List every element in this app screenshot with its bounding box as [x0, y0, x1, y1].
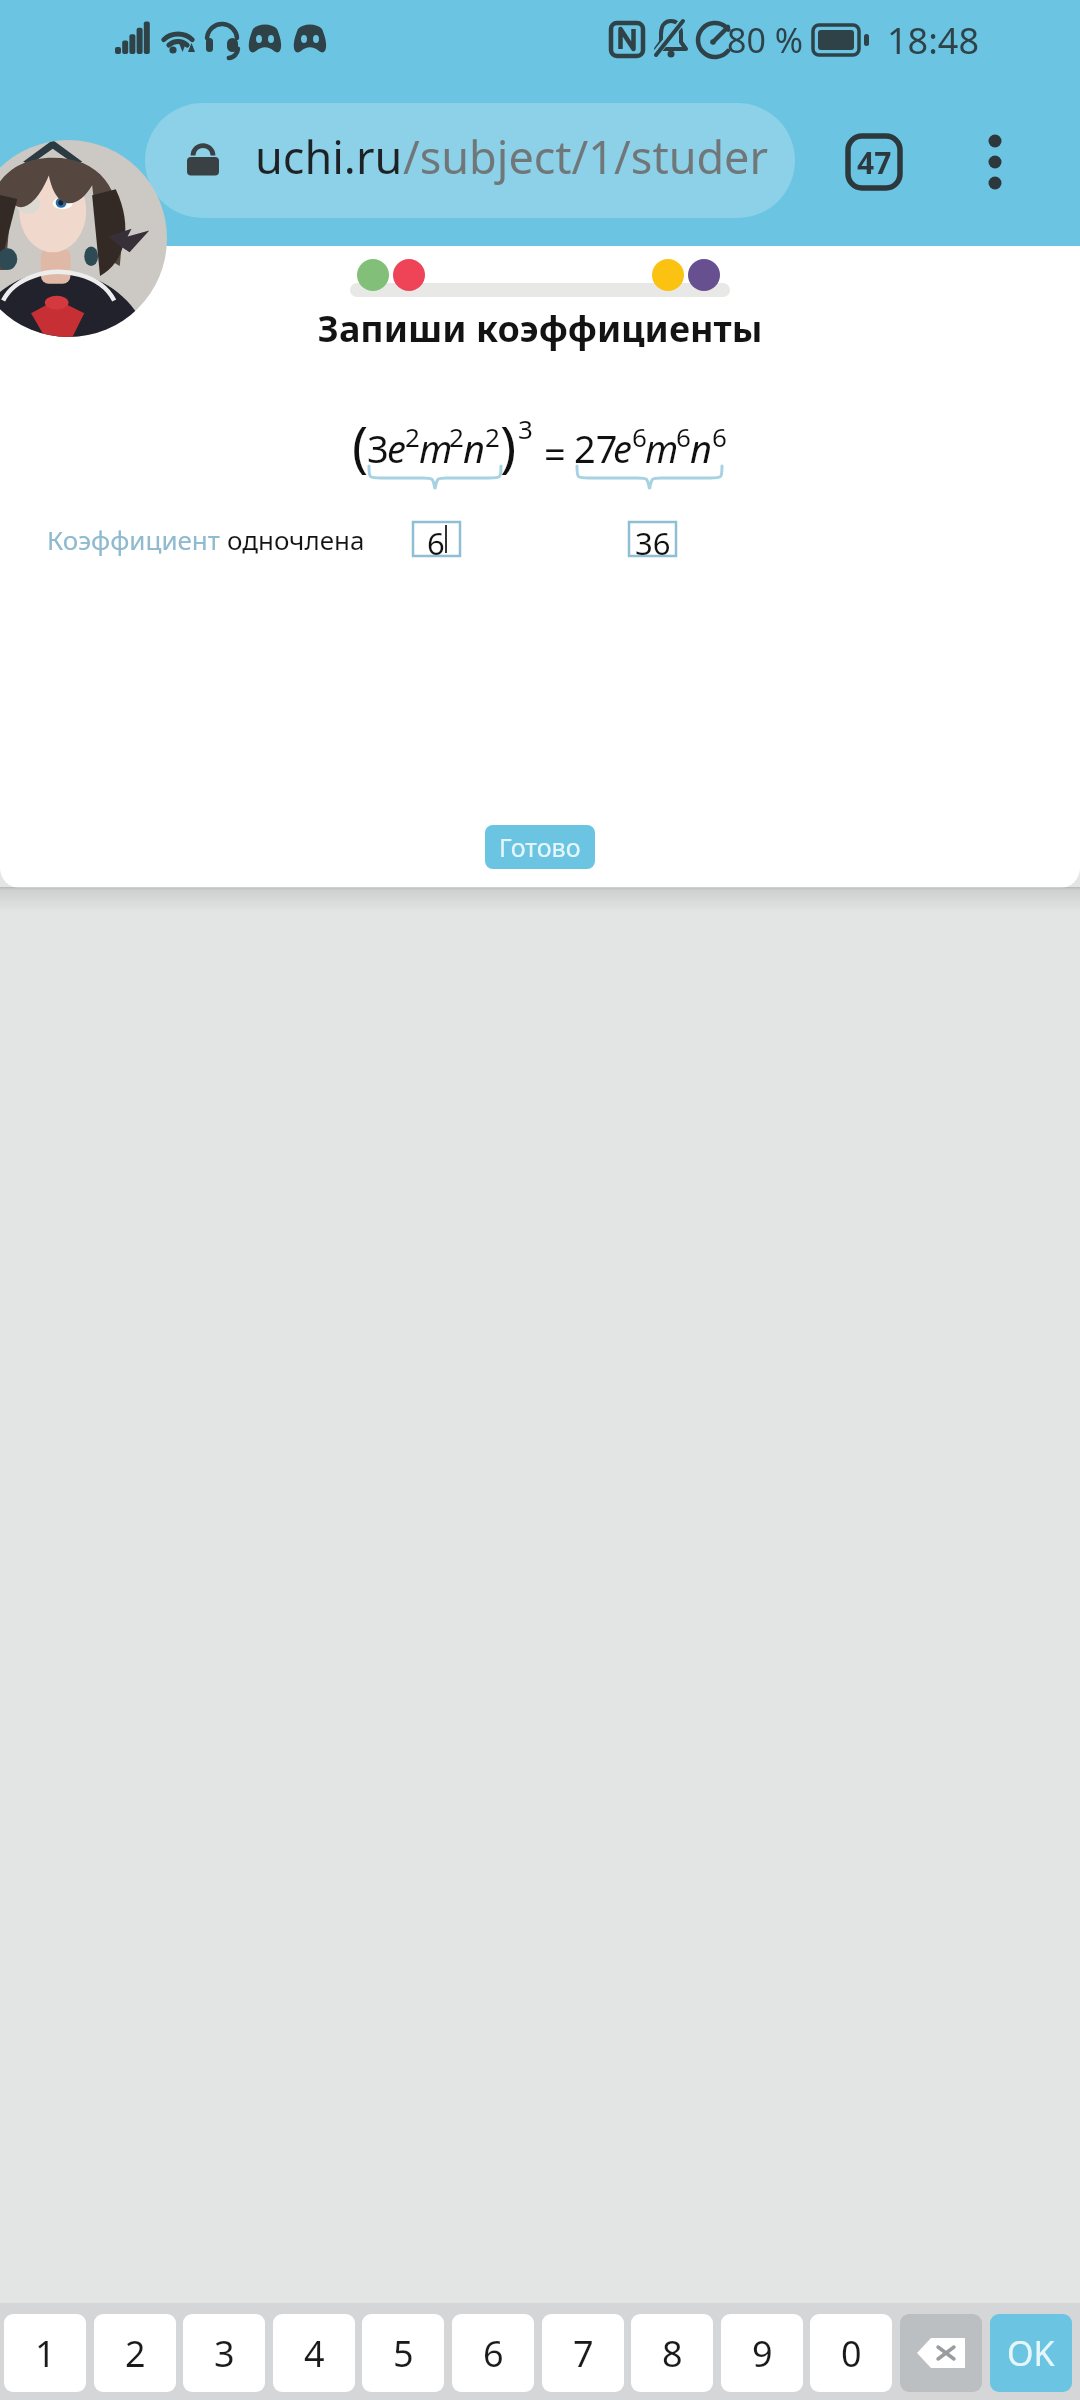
staticText: 27: [574, 422, 618, 474]
button[interactable]: Tabs: [846, 134, 902, 190]
staticText: e: [387, 422, 406, 474]
staticText: m: [419, 422, 453, 474]
staticText: n: [690, 422, 713, 474]
staticText: (: [352, 408, 369, 482]
button[interactable]: More options: [963, 130, 1027, 194]
button[interactable]: 9: [721, 2314, 803, 2392]
staticText: 2: [405, 419, 420, 454]
staticText: Коэффициент: [47, 522, 227, 557]
button[interactable]: Готово: [485, 825, 595, 869]
button[interactable]: 6: [452, 2314, 534, 2392]
staticText: uchi.ru: [255, 126, 403, 187]
staticText: Готово: [499, 830, 581, 864]
staticText: 18:48: [887, 16, 980, 65]
staticText: m: [645, 422, 679, 474]
button[interactable]: 7: [542, 2314, 624, 2392]
button[interactable]: 5: [362, 2314, 444, 2392]
staticText: n: [463, 422, 486, 474]
staticText: 2: [485, 419, 500, 454]
staticText: 6: [427, 522, 445, 556]
button[interactable]: 36: [629, 522, 676, 556]
staticText: e: [613, 422, 632, 474]
staticText: 47: [857, 142, 892, 183]
staticText: 8: [662, 2329, 683, 2378]
staticText: 9: [752, 2329, 773, 2378]
staticText: Запиши коэффициенты: [0, 304, 1080, 353]
staticText: 80 %: [727, 17, 803, 63]
staticText: 3: [367, 422, 389, 474]
staticText: 7: [573, 2329, 594, 2378]
staticText: ): [500, 408, 517, 482]
button[interactable]: 6: [413, 522, 460, 556]
button[interactable]: OK: [990, 2314, 1072, 2392]
staticText: 3: [214, 2329, 235, 2378]
staticText: 6: [483, 2329, 504, 2378]
button[interactable]: 1: [4, 2314, 86, 2392]
staticText: 6: [676, 419, 691, 454]
staticText: 36: [635, 522, 671, 556]
button[interactable]: 2: [94, 2314, 176, 2392]
button[interactable]: Floating avatar: [0, 140, 167, 337]
staticText: /subject/1/studer: [403, 126, 769, 187]
staticText: 6: [712, 419, 727, 454]
staticText: OK: [1007, 2330, 1055, 2376]
button[interactable]: 4: [273, 2314, 355, 2392]
staticText: 5: [393, 2329, 414, 2378]
button[interactable]: 3: [183, 2314, 265, 2392]
button[interactable]: 0: [810, 2314, 892, 2392]
staticText: одночлена: [227, 522, 365, 557]
staticText: =: [544, 427, 566, 479]
staticText: 2: [125, 2329, 146, 2378]
staticText: 1: [35, 2329, 56, 2378]
staticText: 2: [449, 419, 464, 454]
button[interactable]: Backspace: [900, 2314, 982, 2392]
button[interactable]: uchi.ru: [145, 103, 795, 218]
staticText: 0: [841, 2329, 862, 2378]
staticText: 4: [304, 2329, 325, 2378]
staticText: 3: [518, 411, 533, 446]
staticText: 6: [632, 419, 647, 454]
button[interactable]: 8: [631, 2314, 713, 2392]
